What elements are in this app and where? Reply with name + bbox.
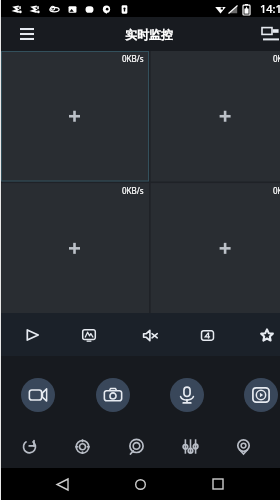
button[interactable]: Mute: [130, 315, 170, 355]
button[interactable]: Settings: [66, 432, 98, 460]
button[interactable]: Adjust: [174, 432, 206, 460]
staticText: 实时监控: [125, 27, 173, 42]
staticText: 0KB/s: [273, 53, 280, 64]
button[interactable]: PTZ: [244, 378, 278, 412]
button[interactable]: Refresh: [13, 432, 45, 460]
staticText: 0KB/s: [122, 53, 144, 64]
button[interactable]: Menu: [14, 21, 40, 47]
staticText: 0KB/s: [273, 185, 280, 196]
staticText: 14:1: [260, 1, 280, 16]
button[interactable]: Recents: [202, 468, 234, 500]
button[interactable]: Home: [124, 468, 156, 500]
button[interactable]: Location: [227, 432, 259, 460]
button[interactable]: Layout: [188, 315, 228, 355]
staticText: 0KB/s: [122, 185, 144, 196]
button[interactable]: Favorite: [247, 315, 280, 355]
button[interactable]: Capture: [96, 378, 130, 412]
button[interactable]: Back: [46, 468, 78, 500]
button[interactable]: Snapshot: [70, 315, 110, 355]
button[interactable]: Devices: [258, 21, 280, 47]
button[interactable]: Talk: [170, 378, 204, 412]
button[interactable]: Play: [12, 315, 52, 355]
button[interactable]: Record: [21, 378, 55, 412]
button[interactable]: Search: [120, 432, 152, 460]
